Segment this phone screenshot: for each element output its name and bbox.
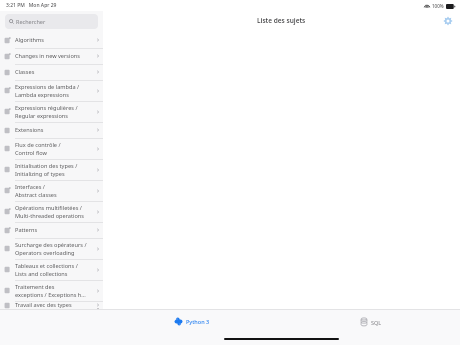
- button[interactable]: Patterns: [0, 222, 103, 238]
- staticText: Travail avec des types: [15, 301, 72, 309]
- button[interactable]: Surcharge des opérateurs /: [0, 238, 103, 259]
- staticText: Multi-threaded operations: [15, 212, 84, 220]
- button[interactable]: Expressions de lambda /: [0, 80, 103, 101]
- staticText: Interfaces /: [15, 183, 45, 191]
- button[interactable]: Tableaux et collections /: [0, 259, 103, 280]
- staticText: Expressions régulières /: [15, 104, 78, 112]
- button[interactable]: Opérations multifiletées /: [0, 201, 103, 222]
- button[interactable]: Expressions régulières /: [0, 101, 103, 122]
- staticText: Control flow: [15, 149, 47, 157]
- button[interactable]: Flux de contrôle /: [0, 138, 103, 159]
- staticText: exceptions / Exceptions h...: [15, 291, 86, 299]
- staticText: Opérations multifiletées /: [15, 204, 82, 212]
- staticText: Abstract classes: [15, 191, 57, 199]
- staticText: Operators overloading: [15, 249, 75, 257]
- button[interactable]: Rechercher: [5, 14, 98, 29]
- staticText: Changes in new versions: [15, 52, 80, 60]
- button[interactable]: Settings: [441, 14, 455, 28]
- staticText: 3:21 PM Mon Apr 29: [6, 2, 57, 9]
- staticText: Regular expressions: [15, 112, 68, 120]
- staticText: Traitement des: [15, 283, 55, 291]
- button[interactable]: Python 3: [166, 315, 218, 328]
- staticText: Tableaux et collections /: [15, 262, 78, 270]
- staticText: Lambda expressions: [15, 91, 69, 99]
- button[interactable]: Interfaces /: [0, 180, 103, 201]
- staticText: Liste des sujets: [257, 16, 306, 25]
- button[interactable]: Travail avec des types: [0, 301, 103, 309]
- staticText: 100%: [432, 3, 444, 9]
- button[interactable]: Algorithms: [0, 32, 103, 48]
- staticText: Algorithms: [15, 36, 44, 44]
- staticText: Expressions de lambda /: [15, 83, 80, 91]
- staticText: Rechercher: [16, 18, 46, 25]
- button[interactable]: Extensions: [0, 122, 103, 138]
- staticText: Initialisation des types /: [15, 162, 78, 170]
- button[interactable]: Initialisation des types /: [0, 159, 103, 180]
- staticText: Python 3: [186, 318, 210, 325]
- staticText: Flux de contrôle /: [15, 141, 61, 149]
- staticText: Classes: [15, 68, 35, 76]
- button[interactable]: Changes in new versions: [0, 48, 103, 64]
- button[interactable]: Traitement des: [0, 280, 103, 301]
- staticText: Lists and collections: [15, 270, 68, 278]
- staticText: Patterns: [15, 226, 38, 234]
- staticText: Extensions: [15, 126, 44, 134]
- button[interactable]: SQL: [352, 316, 390, 328]
- staticText: SQL: [371, 319, 382, 326]
- staticText: Initializing of types: [15, 170, 65, 178]
- staticText: Surcharge des opérateurs /: [15, 241, 87, 249]
- button[interactable]: Classes: [0, 64, 103, 80]
